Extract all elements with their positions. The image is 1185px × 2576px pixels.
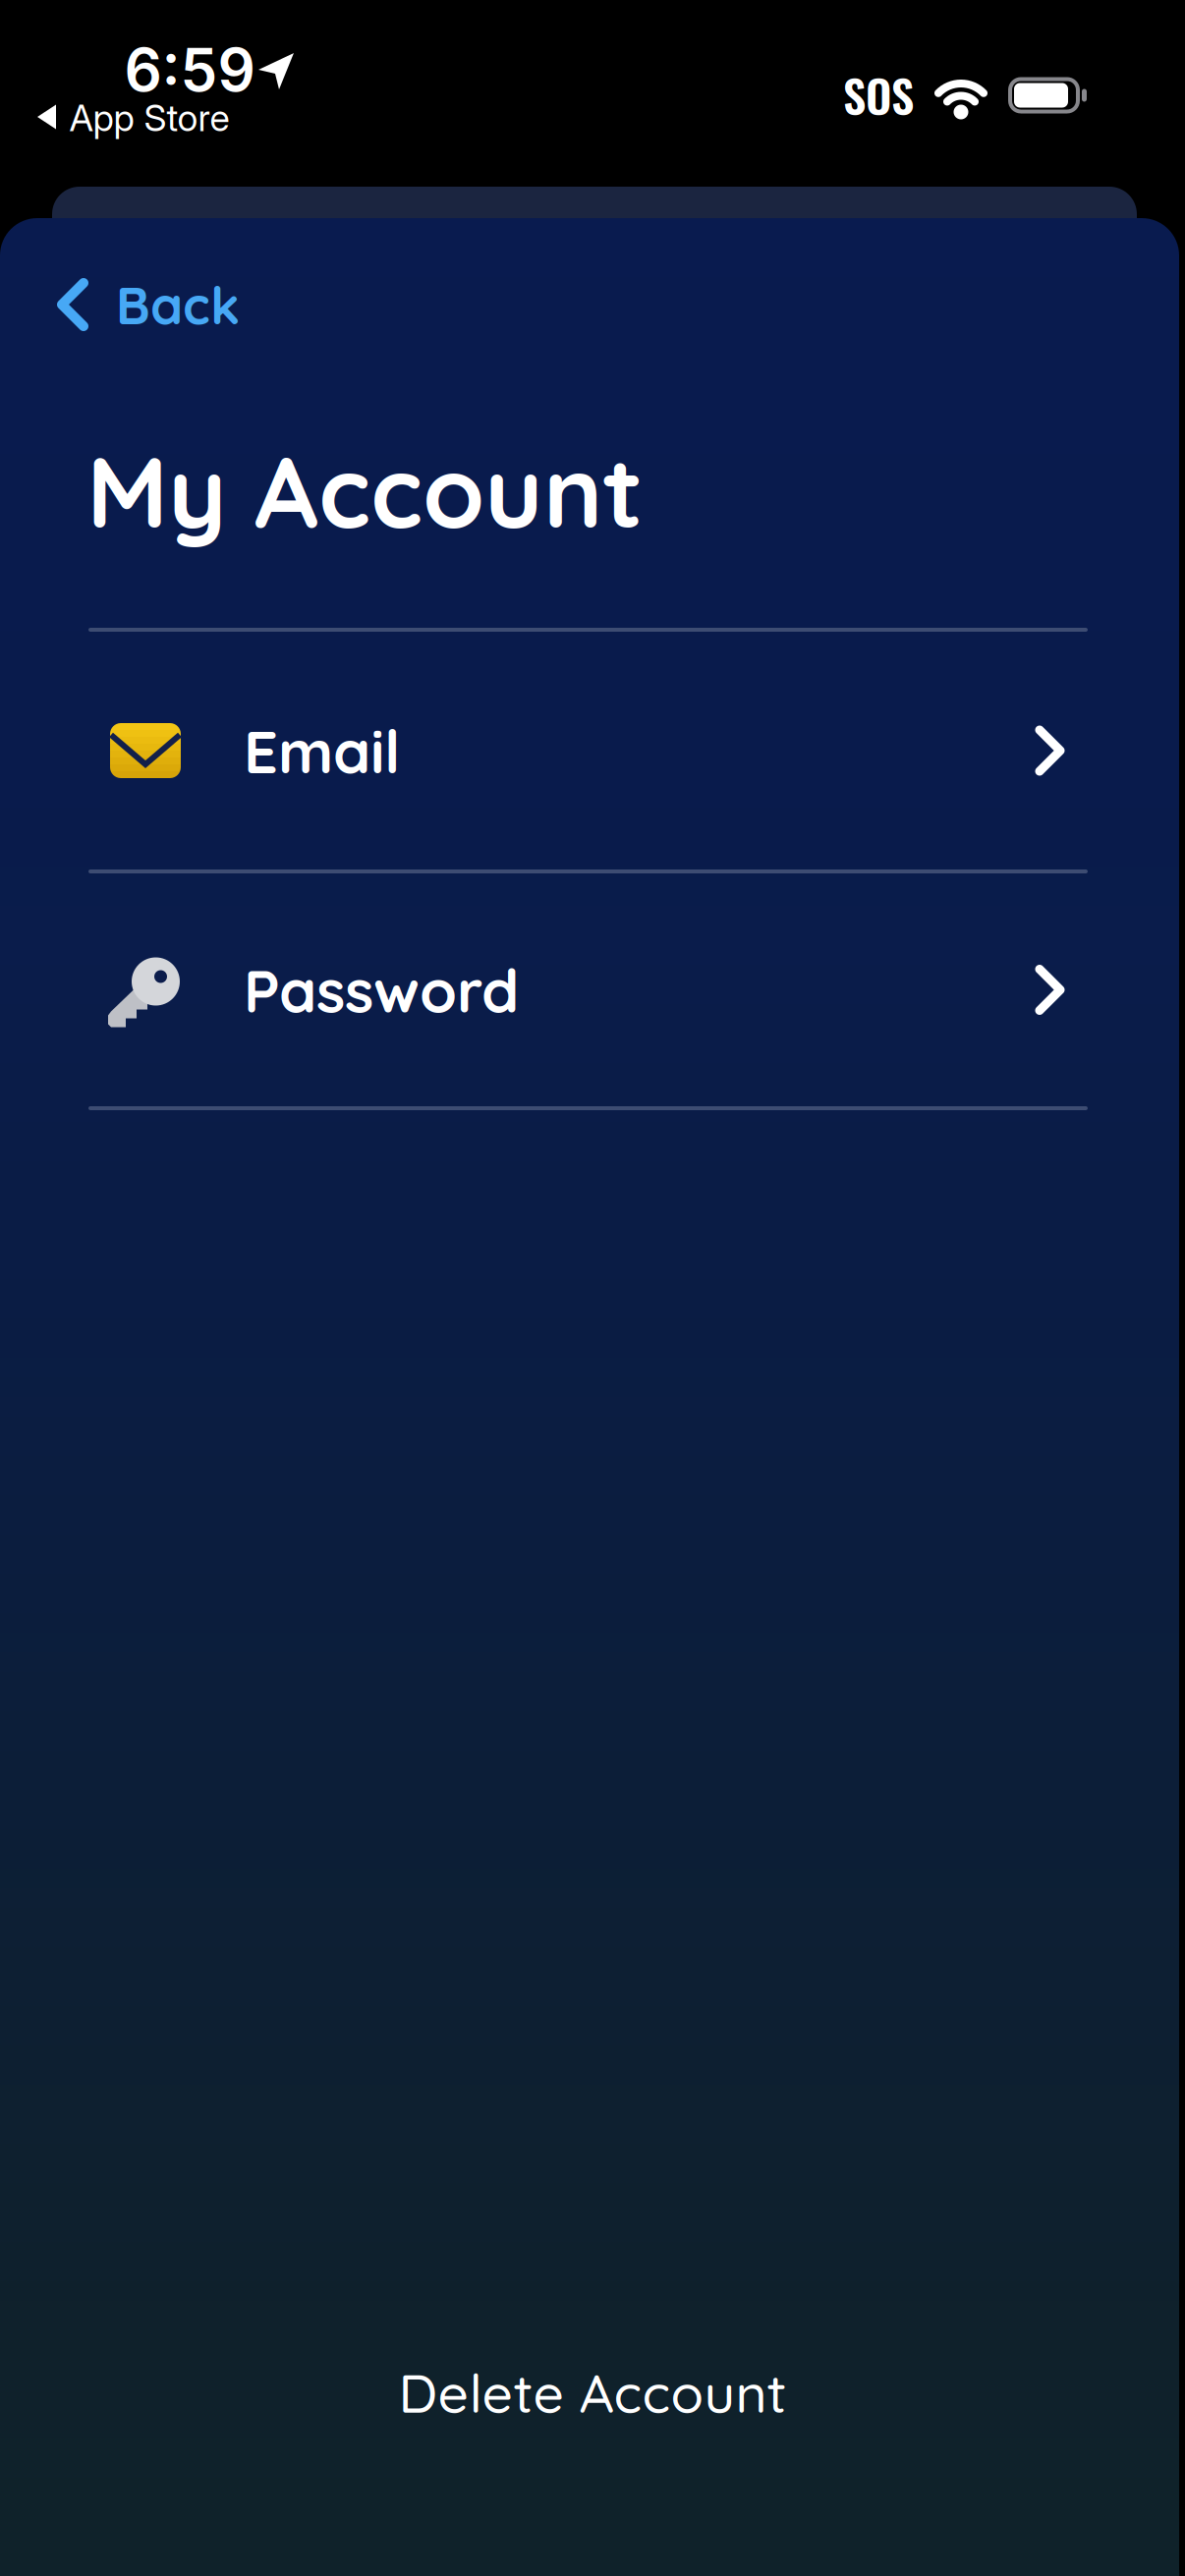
button[interactable]: Password [0,873,1185,1106]
staticText: Email [244,713,400,788]
staticText: App Store [69,96,229,140]
button[interactable]: Back [0,272,240,337]
button[interactable]: Delete Account [398,2363,787,2422]
staticText: SOS [843,61,914,128]
staticText: Password [244,952,519,1027]
staticText: Delete Account [398,2358,787,2426]
staticText: Back [116,272,240,337]
staticText: 6:59 [124,34,255,105]
button[interactable]: Email [0,632,1185,869]
staticText: My Account [86,428,644,553]
